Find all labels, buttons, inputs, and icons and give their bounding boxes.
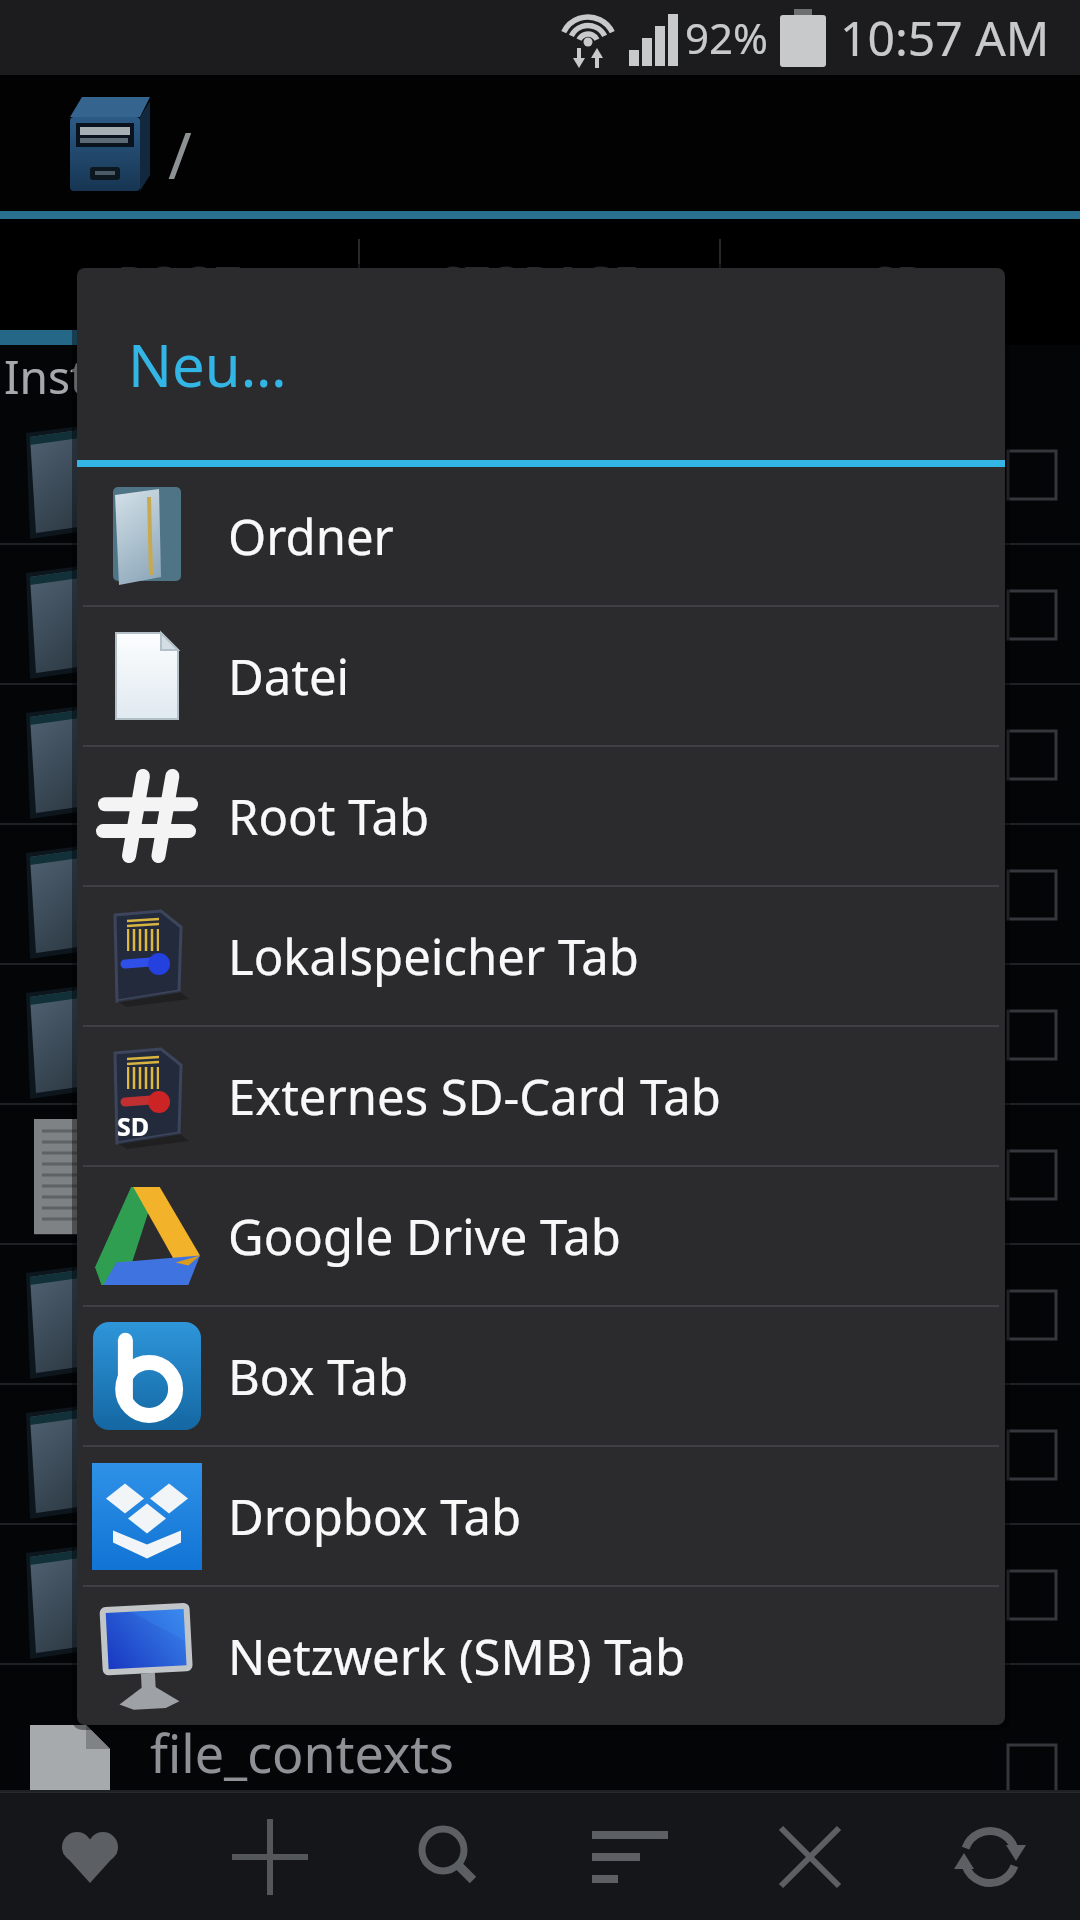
button[interactable]: Dropbox Tab (77, 1447, 1005, 1585)
staticText: Lokalspeicher Tab (228, 923, 639, 990)
staticText: SD (117, 1109, 150, 1143)
button[interactable]: SD (721, 219, 1080, 345)
button[interactable] (360, 1793, 540, 1920)
button[interactable]: Ordner (77, 467, 1005, 605)
staticText: Neu… (128, 325, 287, 404)
button[interactable]: Box Tab (77, 1307, 1005, 1445)
button[interactable]: file_contexts (0, 1665, 1080, 1792)
button[interactable] (0, 1793, 180, 1920)
button[interactable] (0, 545, 1080, 685)
staticText: SD (872, 252, 929, 312)
button[interactable]: Lokalspeicher Tab (77, 887, 1005, 1025)
button[interactable]: Google Drive Tab (77, 1167, 1005, 1305)
button[interactable]: Root Tab (77, 747, 1005, 885)
staticText: Externes SD-Card Tab (228, 1063, 721, 1130)
button[interactable]: SD (77, 1027, 1005, 1165)
staticText: Box Tab (228, 1343, 409, 1410)
button[interactable] (0, 965, 1080, 1105)
staticText: Datei (228, 643, 350, 710)
button[interactable] (0, 1385, 1080, 1525)
button[interactable] (0, 825, 1080, 965)
button[interactable]: ROOT (0, 219, 358, 345)
staticText: Netzwerk (SMB) Tab (228, 1623, 686, 1690)
staticText: Installierte Apps (4, 345, 356, 405)
button[interactable]: Datei (77, 607, 1005, 745)
staticText: ROOT (118, 252, 241, 312)
staticText: 10:57 AM (840, 5, 1050, 70)
button[interactable] (900, 1793, 1080, 1920)
button[interactable] (0, 1525, 1080, 1665)
button[interactable] (720, 1793, 900, 1920)
staticText: 92% (685, 9, 768, 66)
staticText: Root Tab (228, 783, 430, 850)
staticText: Dropbox Tab (228, 1483, 522, 1550)
button[interactable] (0, 1105, 1080, 1245)
button[interactable] (180, 1793, 360, 1920)
button[interactable] (0, 405, 1080, 545)
staticText: / (168, 111, 192, 198)
staticText: file_contexts (150, 1717, 454, 1788)
button[interactable] (0, 685, 1080, 825)
button[interactable]: Netzwerk (SMB) Tab (77, 1587, 1005, 1725)
staticText: Google Drive Tab (228, 1203, 621, 1270)
button[interactable] (540, 1793, 720, 1920)
staticText: STORAGE (440, 252, 639, 312)
staticText: Ordner (228, 503, 394, 570)
button[interactable]: STORAGE (360, 219, 719, 345)
button[interactable] (0, 1245, 1080, 1385)
